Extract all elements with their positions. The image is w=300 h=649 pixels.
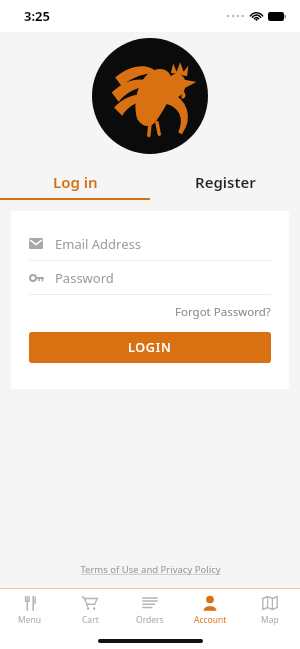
staticText: Menu bbox=[18, 614, 42, 626]
staticText: Map bbox=[261, 614, 279, 626]
other: Map bbox=[262, 595, 278, 611]
staticText: LOGIN bbox=[128, 339, 172, 356]
other: Cart bbox=[82, 595, 98, 611]
staticText: Terms of Use and Privacy Policy bbox=[80, 563, 221, 576]
staticText: Orders bbox=[136, 614, 164, 626]
staticText: 3:25 bbox=[24, 7, 50, 25]
button[interactable]: Menu bbox=[0, 589, 60, 631]
staticText: Password bbox=[55, 269, 114, 287]
button[interactable]: Forgot Password? bbox=[175, 302, 271, 322]
button[interactable]: Register bbox=[150, 166, 300, 198]
button[interactable]: Cart bbox=[60, 589, 120, 631]
button[interactable]: Password bbox=[29, 261, 271, 294]
button[interactable]: Orders bbox=[120, 589, 180, 631]
staticText: Log in bbox=[53, 172, 98, 192]
staticText: Forgot Password? bbox=[175, 304, 271, 320]
other: Account bbox=[202, 595, 218, 611]
button[interactable]: Map bbox=[240, 589, 300, 631]
button[interactable]: Account bbox=[180, 589, 240, 631]
staticText: Email Address bbox=[55, 235, 141, 253]
button[interactable]: LOGIN bbox=[29, 332, 271, 363]
button[interactable]: Terms of Use and Privacy Policy bbox=[76, 559, 225, 580]
staticText: Cart bbox=[82, 614, 99, 626]
staticText: Account bbox=[194, 614, 227, 626]
staticText: Register bbox=[195, 172, 256, 192]
button[interactable]: Email Address bbox=[29, 227, 271, 260]
other: Orders bbox=[142, 595, 158, 611]
other: Menu bbox=[22, 595, 38, 611]
button[interactable]: Log in bbox=[0, 166, 150, 198]
